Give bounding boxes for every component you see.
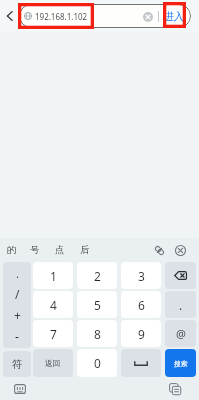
button[interactable]: 的 [0,238,23,262]
button[interactable]: 号 [23,238,47,262]
button[interactable]: 9 [121,320,161,347]
staticText: 返回 [45,358,61,368]
button[interactable]: 点 [47,238,72,262]
staticText: . [179,297,183,313]
staticText: 号 [30,244,40,256]
staticText: - [15,328,19,344]
button[interactable]: . [3,262,31,348]
button[interactable]: 7 [33,320,73,347]
button[interactable]: 4 [33,291,73,318]
staticText: . [16,266,19,281]
button[interactable]: 返回 [33,349,73,377]
staticText: 4 [50,297,57,313]
button[interactable]: 192.168.1.102 [19,4,191,28]
button[interactable]: 搜索 [165,349,196,377]
staticText: 0 [94,355,101,371]
staticText: 的 [7,244,17,256]
staticText: 6 [138,297,145,313]
button[interactable]: Switch keyboard [13,382,26,395]
staticText: + [14,307,21,323]
button[interactable]: 8 [77,320,117,347]
staticText: @ [176,326,186,341]
button[interactable]: Clear [139,8,156,25]
button[interactable]: 1 [33,262,73,289]
staticText: 点 [55,244,65,256]
button[interactable]: Space [121,349,161,377]
staticText: 3 [138,268,145,284]
staticText: / [15,286,20,302]
button[interactable]: 3 [121,262,161,289]
button[interactable]: @ [165,320,196,347]
button[interactable]: Clipboard [149,240,169,260]
staticText: 搜索 [174,359,188,368]
staticText: 7 [50,326,57,342]
staticText: 5 [94,297,101,313]
staticText: 进入 [163,10,184,23]
button[interactable]: 符 [3,351,31,377]
staticText: 2 [94,268,101,284]
staticText: 192.168.1.102 [35,11,88,22]
staticText: 9 [138,326,145,342]
staticText: 8 [94,326,101,342]
button[interactable]: 后 [72,238,97,262]
button[interactable]: 5 [77,291,117,318]
button[interactable]: . [165,291,196,318]
staticText: 符 [12,358,23,371]
button[interactable]: 0 [77,349,117,377]
button[interactable]: Back [3,9,17,23]
button[interactable]: 进入 [159,4,188,28]
staticText: 后 [80,244,90,256]
button[interactable]: Backspace [165,262,196,289]
button[interactable]: Close keyboard [170,240,190,260]
button[interactable]: 2 [77,262,117,289]
button[interactable]: 6 [121,291,161,318]
button[interactable]: Clipboard history [168,382,181,395]
staticText: 1 [50,268,57,284]
